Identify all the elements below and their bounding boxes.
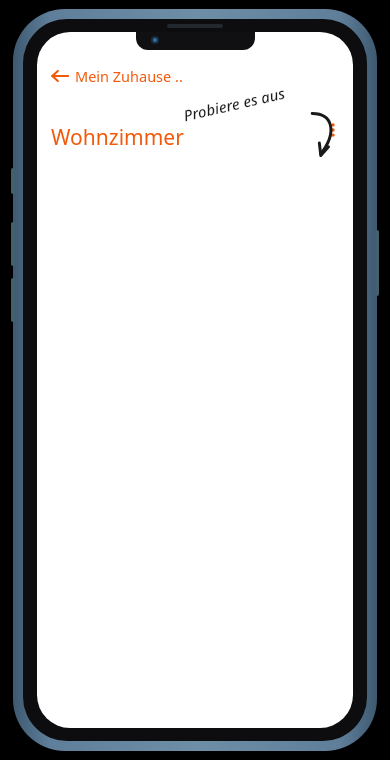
button[interactable]: Weitere Optionen (315, 112, 351, 148)
staticText: Mein Zuhause .. (75, 66, 183, 86)
staticText: Probiere es aus (181, 83, 287, 125)
staticText: Wohnzimmer (51, 123, 184, 152)
button[interactable]: Zurück (45, 58, 189, 94)
other: Zurück (51, 67, 69, 85)
